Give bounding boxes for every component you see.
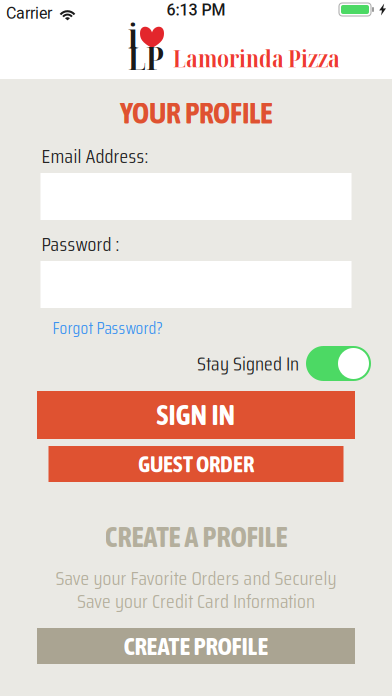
staticText: SIGN IN (156, 399, 235, 431)
staticText: Carrier (6, 4, 52, 23)
staticText: Save your Favorite Orders and Securely (55, 562, 336, 594)
button[interactable]: Forgot Password? (40, 308, 176, 339)
button[interactable]: SIGN IN (37, 391, 355, 439)
button[interactable]: CREATE PROFILE (37, 628, 355, 664)
staticText: i (128, 11, 138, 59)
staticText: Email Address: (41, 140, 148, 172)
staticText: Save your Credit Card Information (77, 585, 315, 617)
staticText: Forgot Password? (52, 314, 162, 342)
staticText: CREATE A PROFILE (104, 521, 287, 553)
button[interactable]: Stay Signed In (306, 346, 371, 381)
staticText: YOUR PROFILE (120, 96, 272, 130)
staticText: 6:13 PM (166, 1, 225, 19)
staticText: CREATE PROFILE (123, 632, 268, 660)
staticText: LP (128, 34, 163, 80)
staticText: Stay Signed In (197, 348, 299, 379)
staticText: Lamorinda Pizza (173, 42, 340, 74)
staticText: Password : (41, 228, 119, 260)
button[interactable]: GUEST ORDER (48, 446, 343, 482)
staticText: GUEST ORDER (138, 451, 254, 477)
